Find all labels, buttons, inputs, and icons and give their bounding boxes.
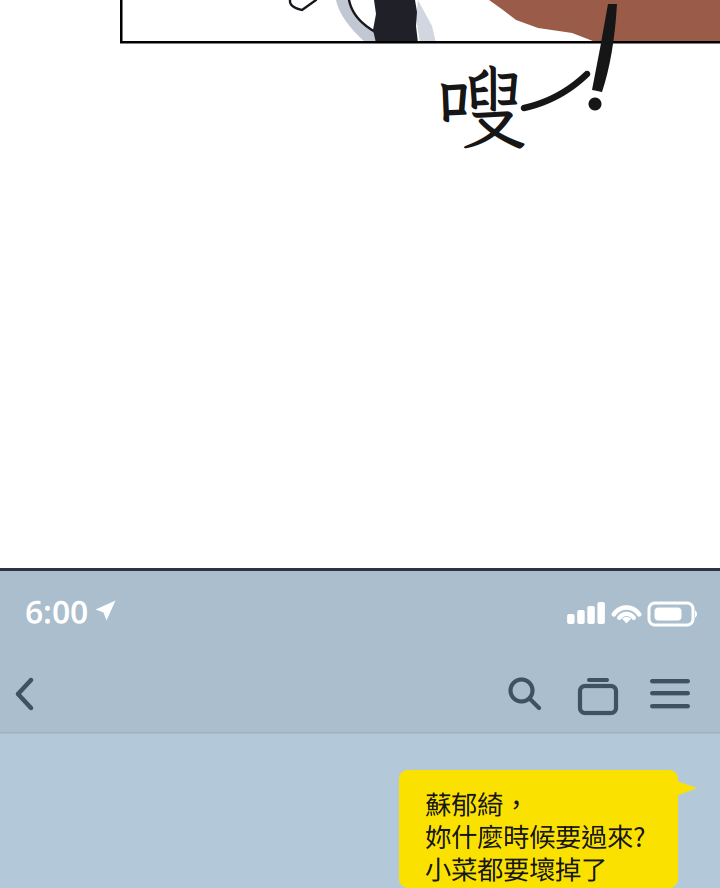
button[interactable]: Back (0, 670, 58, 732)
button[interactable]: Menu (640, 670, 700, 732)
button[interactable]: Search (495, 670, 555, 732)
staticText: 6:00 (25, 590, 88, 632)
staticText: 妳什麼時候要過來? (425, 816, 646, 855)
button[interactable]: Tabs (567, 670, 627, 732)
staticText: 小菜都要壞掉了 (425, 849, 607, 887)
staticText: 嗖 (434, 44, 527, 167)
staticText: 蘇郁綺， (425, 784, 529, 822)
